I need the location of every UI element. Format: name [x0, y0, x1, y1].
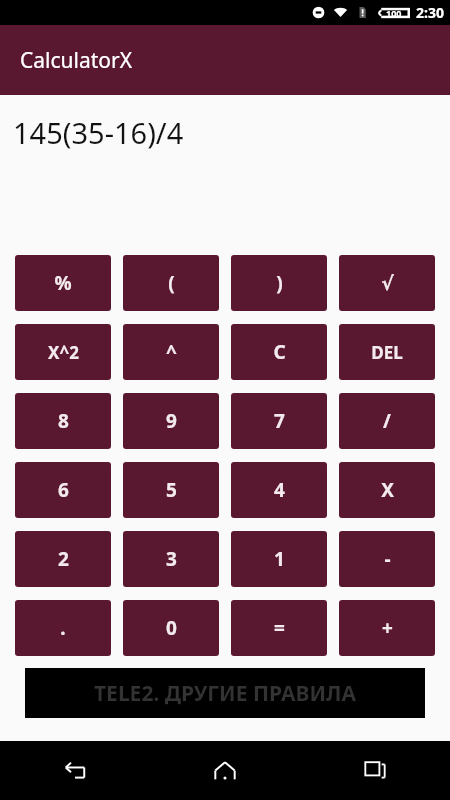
button[interactable]: DEL — [339, 324, 435, 380]
button[interactable]: Back — [53, 749, 97, 793]
button[interactable]: ) — [231, 255, 327, 311]
button[interactable]: 8 — [15, 393, 111, 449]
staticText: 3 — [166, 546, 177, 572]
button[interactable]: . — [15, 600, 111, 656]
button[interactable]: 1 — [231, 531, 327, 587]
staticText: % — [54, 270, 72, 296]
staticText: 5 — [166, 477, 177, 503]
button[interactable]: 5 — [123, 462, 219, 518]
staticText: 4 — [274, 477, 285, 503]
button[interactable]: % — [15, 255, 111, 311]
button[interactable]: Recent apps — [353, 749, 397, 793]
button[interactable]: X^2 — [15, 324, 111, 380]
staticText: ^ — [166, 339, 177, 365]
button[interactable]: 9 — [123, 393, 219, 449]
button[interactable]: Home — [203, 749, 247, 793]
button[interactable]: 7 — [231, 393, 327, 449]
button[interactable]: C — [231, 324, 327, 380]
staticText: 145(35-16)/4 — [13, 113, 184, 152]
staticText: √ — [381, 272, 394, 294]
button[interactable]: √ — [339, 255, 435, 311]
staticText: - — [384, 546, 391, 572]
staticText: 7 — [274, 408, 285, 434]
staticText: 8 — [58, 408, 69, 434]
button[interactable]: ^ — [123, 324, 219, 380]
button[interactable]: 0 — [123, 600, 219, 656]
button[interactable]: + — [339, 600, 435, 656]
staticText: CalculatorX — [20, 46, 132, 75]
staticText: ) — [276, 270, 283, 296]
staticText: X — [381, 477, 394, 503]
staticText: 9 — [166, 408, 177, 434]
button[interactable]: - — [339, 531, 435, 587]
staticText: 1 — [274, 546, 285, 572]
button[interactable]: / — [339, 393, 435, 449]
staticText: DEL — [371, 341, 403, 364]
button[interactable]: X — [339, 462, 435, 518]
button[interactable]: 4 — [231, 462, 327, 518]
staticText: 100 — [386, 7, 402, 19]
staticText: 2 — [58, 546, 69, 572]
button[interactable]: 6 — [15, 462, 111, 518]
button[interactable]: 2 — [15, 531, 111, 587]
staticText: / — [383, 408, 391, 434]
staticText: . — [60, 615, 66, 641]
staticText: = — [274, 615, 285, 641]
staticText: 2:30 — [416, 3, 444, 22]
staticText: 6 — [58, 477, 69, 503]
staticText: TELE2. ДРУГИЕ ПРАВИЛА — [94, 679, 356, 708]
staticText: X^2 — [48, 341, 79, 364]
staticText: 0 — [166, 615, 177, 641]
button[interactable]: ( — [123, 255, 219, 311]
button[interactable]: TELE2. ДРУГИЕ ПРАВИЛА — [25, 668, 425, 718]
staticText: ( — [168, 270, 175, 296]
staticText: + — [382, 615, 393, 641]
button[interactable]: = — [231, 600, 327, 656]
button[interactable]: 3 — [123, 531, 219, 587]
staticText: C — [273, 339, 286, 365]
